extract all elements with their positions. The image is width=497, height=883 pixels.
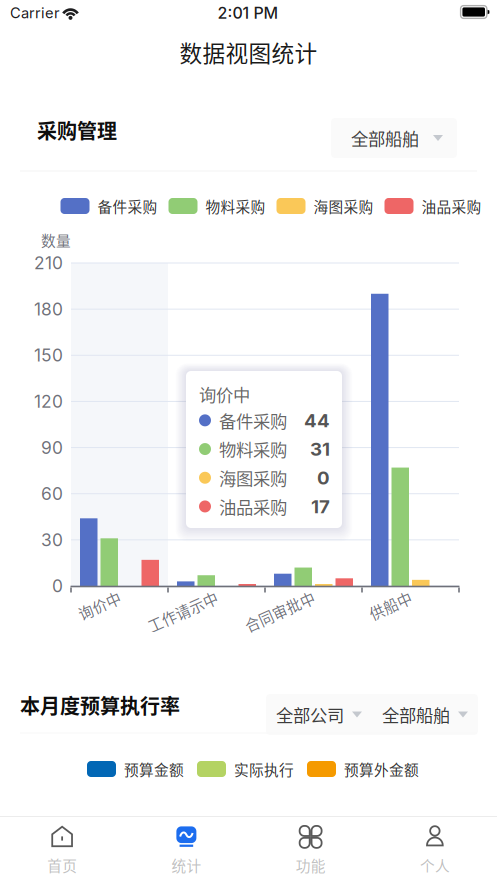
- staticText: 全部公司: [276, 702, 344, 727]
- staticText: 询价中: [199, 381, 250, 407]
- staticText: 90: [41, 437, 63, 458]
- staticText: 数据视图统计: [179, 36, 317, 68]
- button[interactable]: 全部公司: [266, 694, 372, 735]
- staticText: 17: [311, 495, 330, 518]
- staticText: 采购管理: [37, 115, 117, 144]
- staticText: 油品采购: [219, 494, 287, 519]
- staticText: 150: [34, 345, 63, 366]
- staticText: 海图采购: [219, 465, 287, 490]
- button[interactable]: 全部船舶: [331, 118, 457, 158]
- staticText: 30: [41, 529, 63, 550]
- staticText: 44: [304, 409, 330, 432]
- staticText: 实际执行: [234, 758, 294, 780]
- staticText: 预算金额: [124, 758, 184, 780]
- staticText: Carrier: [10, 4, 60, 22]
- staticText: 120: [34, 391, 63, 412]
- staticText: 询价中: [75, 585, 120, 607]
- staticText: 180: [34, 299, 63, 320]
- staticText: 数量: [41, 229, 71, 251]
- staticText: 0: [317, 466, 330, 489]
- button[interactable]: 全部船舶: [372, 694, 478, 735]
- staticText: 物料采购: [205, 195, 265, 217]
- staticText: 0: [52, 575, 63, 596]
- staticText: 31: [310, 438, 330, 460]
- button[interactable]: 首页: [0, 817, 124, 883]
- staticText: 备件采购: [97, 195, 157, 217]
- staticText: 工作请示中: [142, 585, 217, 607]
- staticText: 2:01 PM: [217, 3, 278, 23]
- button[interactable]: 统计: [124, 817, 248, 883]
- staticText: 物料采购: [219, 436, 287, 462]
- staticText: 统计: [171, 854, 201, 876]
- staticText: 功能: [296, 854, 326, 876]
- staticText: 预算外金额: [344, 758, 419, 780]
- staticText: 海图采购: [313, 195, 373, 217]
- staticText: 油品采购: [421, 195, 481, 217]
- staticText: 合同审批中: [239, 585, 314, 607]
- button[interactable]: 功能: [248, 817, 373, 883]
- staticText: 全部船舶: [382, 702, 450, 727]
- staticText: 首页: [47, 854, 77, 876]
- staticText: 供船中: [366, 585, 411, 607]
- staticText: 备件采购: [219, 408, 287, 433]
- staticText: 全部船舶: [351, 125, 419, 151]
- button[interactable]: 个人: [373, 817, 497, 883]
- staticText: 210: [34, 252, 63, 273]
- staticText: 本月度预算执行率: [20, 690, 180, 719]
- staticText: 个人: [420, 854, 450, 876]
- staticText: 60: [41, 483, 63, 504]
